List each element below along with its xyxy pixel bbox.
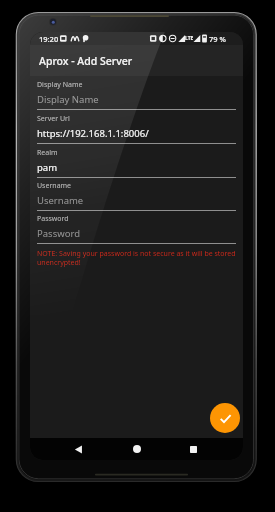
button[interactable]: Back: [68, 439, 88, 459]
staticText: 19:20: [39, 34, 59, 44]
staticText: Display Name: [37, 80, 83, 90]
button[interactable]: pam: [37, 161, 58, 174]
staticText: Server Url: [37, 114, 70, 124]
button[interactable]: Display Name: [37, 93, 99, 106]
staticText: LTE: [185, 35, 194, 42]
button[interactable]: Home: [127, 439, 147, 459]
button[interactable]: Recents: [183, 439, 203, 459]
button[interactable]: https://192.168.1.1:8006/: [37, 127, 149, 140]
staticText: NOTE: Saving your password is not secure…: [37, 249, 236, 267]
staticText: Aprox - Add Server: [39, 54, 133, 68]
staticText: Realm: [37, 148, 58, 158]
staticText: Username: [37, 181, 72, 191]
staticText: Password: [37, 214, 69, 224]
button[interactable]: Password: [37, 227, 80, 240]
button[interactable]: Aprox - Add Server: [30, 45, 243, 76]
staticText: 79 %: [209, 34, 226, 44]
button[interactable]: Save: [210, 403, 240, 433]
button[interactable]: Username: [37, 194, 84, 207]
